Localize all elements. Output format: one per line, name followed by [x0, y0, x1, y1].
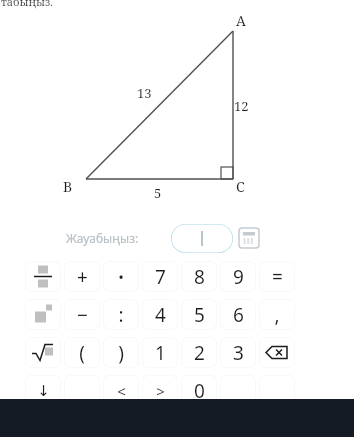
button[interactable]: 1	[142, 337, 178, 368]
staticText: A	[236, 11, 246, 30]
staticText: 0	[194, 378, 205, 404]
staticText: 5	[194, 302, 205, 328]
staticText: •	[118, 267, 124, 287]
staticText: >	[156, 381, 165, 401]
button[interactable]: =	[259, 261, 295, 292]
button[interactable]: 5	[181, 299, 217, 330]
button[interactable]: 9	[220, 261, 256, 292]
staticText: −	[77, 302, 88, 328]
button[interactable]: Fraction	[25, 261, 61, 292]
staticText: 3	[233, 340, 244, 366]
staticText: <	[117, 381, 126, 401]
staticText: Жауабыңыз:	[66, 230, 139, 246]
button[interactable]: 4	[142, 299, 178, 330]
button[interactable]: ,	[259, 299, 295, 330]
button[interactable]: <	[103, 375, 139, 406]
staticText: 8	[194, 264, 205, 290]
staticText: 1	[155, 340, 166, 366]
button[interactable]: 0	[181, 375, 217, 406]
button[interactable]: Power	[25, 299, 61, 330]
button[interactable]: +	[64, 261, 100, 292]
button[interactable]	[64, 375, 100, 406]
button[interactable]: Backspace	[259, 337, 295, 368]
staticText: ↓	[37, 382, 50, 399]
staticText: :	[118, 302, 124, 328]
button[interactable]: 6	[220, 299, 256, 330]
staticText: (	[79, 340, 85, 366]
button[interactable]: )	[103, 337, 139, 368]
staticText: табыңыз.	[1, 0, 54, 9]
staticText: =	[272, 264, 283, 290]
button[interactable]	[259, 375, 295, 406]
staticText: 4	[155, 302, 166, 328]
staticText: 9	[233, 264, 244, 290]
staticText: 2	[194, 340, 205, 366]
button[interactable]: ↓	[25, 375, 61, 406]
button[interactable]: >	[142, 375, 178, 406]
button[interactable]: •	[103, 261, 139, 292]
staticText: C	[236, 177, 245, 196]
button[interactable]: (	[64, 337, 100, 368]
button[interactable]: 8	[181, 261, 217, 292]
staticText: +	[77, 264, 88, 290]
staticText: 5	[154, 184, 162, 202]
staticText: )	[118, 340, 124, 366]
button[interactable]: −	[64, 299, 100, 330]
button[interactable]: Answer input	[171, 224, 233, 253]
button[interactable]: 3	[220, 337, 256, 368]
button[interactable]: :	[103, 299, 139, 330]
button[interactable]: Calculator	[239, 228, 259, 248]
staticText: ,	[274, 302, 280, 328]
button[interactable]	[220, 375, 256, 406]
staticText: 12	[234, 97, 249, 115]
button[interactable]: 2	[181, 337, 217, 368]
button[interactable]: 7	[142, 261, 178, 292]
staticText: B	[63, 177, 73, 196]
staticText: 6	[233, 302, 244, 328]
staticText: 7	[155, 264, 166, 290]
button[interactable]: Square root	[25, 337, 61, 368]
staticText: 13	[137, 84, 152, 102]
